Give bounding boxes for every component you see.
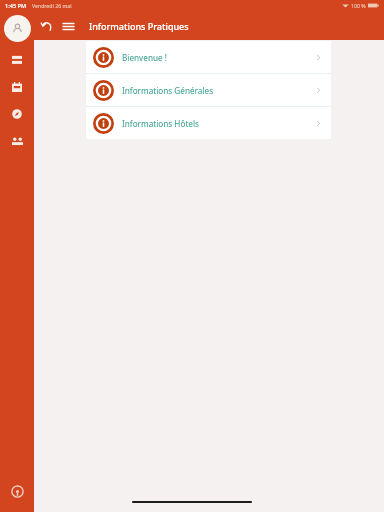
button[interactable]: Back xyxy=(37,16,57,36)
staticText: Vendredi 26 mai xyxy=(32,2,72,9)
button[interactable]: Settings xyxy=(7,481,27,501)
button[interactable]: Profile xyxy=(4,15,31,42)
button[interactable]: Agenda xyxy=(7,50,27,70)
staticText: 100 % xyxy=(351,2,366,9)
staticText: 1:45 PM xyxy=(5,2,27,10)
button[interactable]: Informations Hôtels xyxy=(86,107,331,139)
button[interactable]: Contacts xyxy=(7,131,27,151)
staticText: Informations Hôtels xyxy=(122,118,199,129)
button[interactable]: Explore xyxy=(7,104,27,124)
staticText: Informations Pratiques xyxy=(89,20,189,32)
button[interactable]: Informations Générales xyxy=(86,74,331,106)
button[interactable]: Bienvenue ! xyxy=(86,41,331,73)
staticText: Informations Générales xyxy=(122,85,214,96)
button[interactable]: Menu xyxy=(58,16,78,36)
button[interactable]: Calendar xyxy=(7,77,27,97)
staticText: Bienvenue ! xyxy=(122,52,167,63)
